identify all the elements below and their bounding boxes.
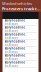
button[interactable]: Story headline [2, 47, 38, 54]
staticText: Protesters track them [2, 6, 41, 11]
staticText: deck copy [4, 29, 17, 33]
staticText: Masked vehicles [2, 1, 32, 6]
staticText: Story headline [4, 19, 25, 22]
button[interactable]: Story headline [2, 61, 38, 68]
button[interactable]: Story headline [2, 40, 38, 47]
staticText: deck copy [4, 36, 17, 40]
staticText: Story headline [4, 26, 25, 29]
button[interactable]: Story headline [2, 26, 38, 33]
staticText: Story headline [4, 33, 25, 36]
staticText: Story headline [4, 61, 25, 64]
staticText: deck copy [4, 43, 17, 47]
button[interactable]: Story headline [2, 54, 38, 61]
button[interactable]: Story headline [2, 19, 38, 26]
button[interactable]: Story headline [2, 33, 38, 40]
staticText: Story headline [4, 40, 25, 43]
staticText: deck copy [4, 57, 17, 61]
staticText: deck copy [4, 50, 17, 54]
staticText: deck copy [4, 64, 17, 68]
staticText: Story headline [4, 54, 25, 57]
staticText: deck copy [4, 22, 17, 26]
staticText: Story headline [4, 47, 25, 50]
